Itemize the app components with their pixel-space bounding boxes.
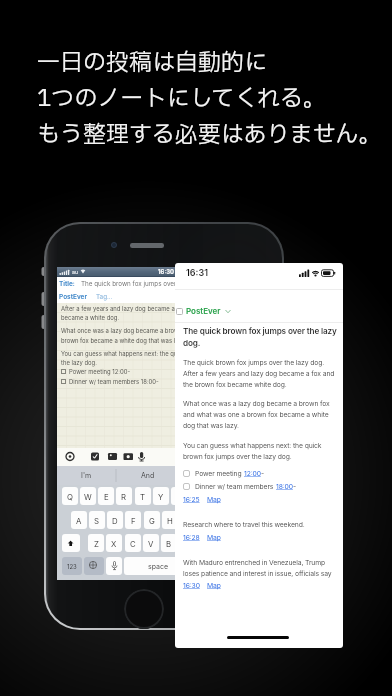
staticText: After a few years and lazy dog became a … bbox=[183, 369, 335, 377]
button[interactable]: O bbox=[208, 487, 224, 505]
staticText: loses patience and interest in issue, of… bbox=[183, 569, 332, 577]
staticText: L bbox=[223, 516, 228, 525]
button[interactable]: space bbox=[124, 557, 192, 575]
staticText: Dinner w/ team members bbox=[195, 482, 276, 490]
staticText: Research where to travel this weekend. bbox=[183, 520, 305, 528]
button[interactable]: Y bbox=[153, 487, 169, 505]
button[interactable]: P bbox=[226, 487, 242, 505]
staticText: 16:25 bbox=[183, 495, 200, 503]
button[interactable]: B bbox=[161, 534, 177, 552]
button[interactable]: Power meeting bbox=[183, 469, 265, 477]
staticText: You can guess what happens next: the qui… bbox=[61, 350, 205, 357]
staticText: - bbox=[293, 482, 297, 490]
button[interactable]: I bbox=[190, 487, 206, 505]
staticText: Power meeting 12:00- bbox=[69, 368, 131, 375]
staticText: Map bbox=[207, 581, 221, 589]
button[interactable]: U bbox=[171, 487, 187, 505]
staticText: PostEver bbox=[59, 293, 88, 301]
button[interactable]: V bbox=[143, 534, 159, 552]
button[interactable]: 16:28 bbox=[183, 533, 221, 541]
button[interactable]: Title: bbox=[57, 277, 271, 290]
staticText: A bbox=[76, 516, 82, 525]
button[interactable]: Dinner w/ team members bbox=[183, 482, 297, 490]
staticText: Power meeting bbox=[195, 469, 244, 477]
staticText: 16:28 bbox=[183, 533, 200, 541]
button[interactable]: Q bbox=[62, 487, 78, 505]
button[interactable]: ⌫ bbox=[220, 534, 238, 552]
button[interactable]: N bbox=[180, 534, 196, 552]
button[interactable]: M bbox=[198, 534, 214, 552]
button[interactable]: Power meeting 12:00- bbox=[61, 368, 131, 375]
button[interactable]: D bbox=[107, 511, 123, 529]
button[interactable] bbox=[106, 557, 122, 575]
staticText: Y bbox=[158, 492, 164, 501]
staticText: R bbox=[121, 492, 127, 501]
staticText: 16:30 bbox=[183, 581, 200, 589]
staticText: - bbox=[261, 469, 265, 477]
staticText: The quick brown fox jumps over the lazy … bbox=[183, 358, 325, 366]
staticText: dog that was lazy. bbox=[183, 421, 239, 429]
staticText: the brown fox became white dog. bbox=[183, 380, 287, 388]
button[interactable]: The bbox=[203, 471, 216, 479]
staticText: B bbox=[166, 539, 172, 548]
staticText: 12:00 bbox=[244, 469, 261, 477]
button[interactable]: C bbox=[125, 534, 141, 552]
button[interactable]: ⬆ bbox=[62, 534, 80, 552]
button[interactable]: 16:25 bbox=[183, 495, 221, 503]
staticText: return bbox=[221, 562, 241, 570]
staticText: space bbox=[148, 562, 169, 570]
staticText: What once was a lazy dog became a brown … bbox=[183, 399, 330, 407]
staticText: X bbox=[111, 539, 117, 548]
button[interactable]: T bbox=[135, 487, 151, 505]
button[interactable]: Dinner w/ team members 18:00- bbox=[61, 378, 159, 385]
staticText: 一日の投稿は自動的に 1つのノートにしてくれる。 もう整理する必要はありません。 bbox=[37, 46, 382, 153]
staticText: D bbox=[112, 516, 118, 525]
staticText: Title: bbox=[59, 280, 75, 288]
staticText: H bbox=[167, 516, 173, 525]
staticText: With Maduro entrenched in Venezuela, Tru… bbox=[183, 558, 326, 566]
staticText: W bbox=[84, 492, 92, 501]
button[interactable]: S bbox=[89, 511, 105, 529]
staticText: Z bbox=[94, 539, 99, 548]
staticText: J bbox=[186, 516, 191, 525]
staticText: 16:30 bbox=[158, 268, 175, 275]
button[interactable]: 123 bbox=[62, 557, 82, 575]
button[interactable]: J bbox=[180, 511, 196, 529]
staticText: brown fox jumps over the lazy dog. bbox=[183, 452, 292, 460]
staticText: Q bbox=[67, 492, 73, 501]
button[interactable]: X bbox=[106, 534, 122, 552]
staticText: Dinner w/ team members 18:00- bbox=[69, 378, 159, 385]
staticText: the lazy dog. bbox=[61, 359, 97, 366]
button[interactable]: return bbox=[195, 557, 267, 575]
button[interactable]: L bbox=[217, 511, 233, 529]
button[interactable]: Z bbox=[88, 534, 104, 552]
staticText: M bbox=[202, 539, 210, 548]
button[interactable]: E bbox=[98, 487, 114, 505]
button[interactable]: W bbox=[80, 487, 96, 505]
button[interactable] bbox=[84, 557, 104, 575]
button[interactable] bbox=[57, 448, 271, 466]
staticText: E bbox=[104, 492, 109, 501]
button[interactable]: R bbox=[116, 487, 132, 505]
button[interactable]: F bbox=[125, 511, 141, 529]
button[interactable]: G bbox=[144, 511, 160, 529]
button[interactable]: PostEver bbox=[176, 306, 231, 316]
button[interactable]: PostEver bbox=[57, 290, 271, 303]
button[interactable]: And bbox=[141, 471, 155, 479]
staticText: T bbox=[140, 492, 146, 501]
staticText: G bbox=[149, 516, 155, 525]
button[interactable]: I'm bbox=[81, 471, 92, 479]
staticText: F bbox=[131, 516, 136, 525]
staticText: PostEver bbox=[186, 306, 221, 316]
staticText: and what was one a brown fox became a wh… bbox=[183, 410, 329, 418]
staticText: ⬆ bbox=[67, 539, 75, 547]
staticText: The quick brown fox jumps over the lazy … bbox=[81, 280, 217, 288]
button[interactable]: A bbox=[71, 511, 87, 529]
button[interactable]: H bbox=[162, 511, 178, 529]
button[interactable]: 16:30 bbox=[183, 581, 221, 589]
staticText: 123 bbox=[67, 563, 77, 570]
button[interactable]: K bbox=[199, 511, 215, 529]
